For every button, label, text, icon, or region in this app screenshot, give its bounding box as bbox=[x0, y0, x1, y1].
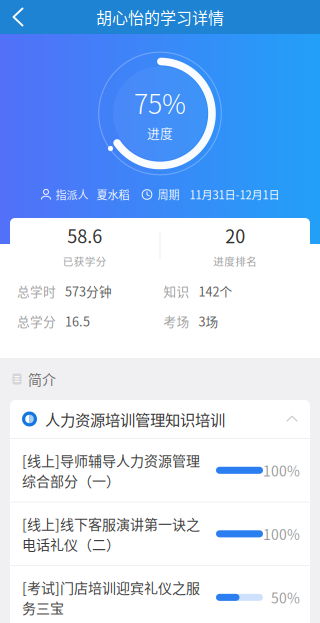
staticText: 58.6 bbox=[67, 222, 102, 248]
staticText: 人力资源培训管理知识培训 bbox=[45, 408, 225, 430]
staticText: 指派人 bbox=[55, 186, 88, 202]
button[interactable]: [线上]导师辅导人力资源管理综合部分（一） bbox=[10, 439, 310, 501]
staticText: 夏水稻 bbox=[96, 186, 129, 202]
staticText: 进度排名 bbox=[213, 253, 257, 269]
button[interactable]: [考试]门店培训迎宾礼仪之服务三宝 bbox=[10, 566, 310, 623]
staticText: 100% bbox=[263, 524, 300, 544]
staticText: [线上]导师辅导人力资源管理综合部分（一） bbox=[22, 450, 200, 490]
staticText: 已获学分 bbox=[63, 253, 107, 269]
staticText: 总学时 bbox=[17, 282, 56, 300]
staticText: 考场 bbox=[163, 312, 189, 330]
button[interactable]: 人力资源培训管理知识培训 bbox=[10, 400, 310, 438]
staticText: 142个 bbox=[198, 282, 232, 300]
staticText: 75% bbox=[134, 83, 186, 122]
staticText: 进度 bbox=[147, 124, 173, 142]
staticText: 周期 bbox=[157, 186, 179, 202]
button[interactable]: [线上]线下客服演讲第一诀之电话礼仪（二） bbox=[10, 502, 310, 565]
staticText: 总学分 bbox=[17, 312, 56, 330]
staticText: 573分钟 bbox=[65, 282, 112, 300]
staticText: 胡心怡的学习详情 bbox=[96, 5, 224, 29]
staticText: 知识 bbox=[163, 282, 189, 300]
staticText: 简介 bbox=[28, 369, 56, 389]
staticText: 50% bbox=[271, 587, 300, 607]
staticText: 100% bbox=[263, 460, 300, 480]
staticText: 16.5 bbox=[65, 312, 90, 330]
staticText: 11月31日-12月1日 bbox=[189, 186, 279, 202]
button[interactable]: Back bbox=[0, 0, 32, 34]
staticText: [线上]线下客服演讲第一诀之电话礼仪（二） bbox=[22, 513, 200, 554]
staticText: [考试]门店培训迎宾礼仪之服务三宝 bbox=[22, 577, 200, 618]
staticText: 20 bbox=[225, 222, 245, 248]
staticText: 3场 bbox=[198, 312, 218, 330]
